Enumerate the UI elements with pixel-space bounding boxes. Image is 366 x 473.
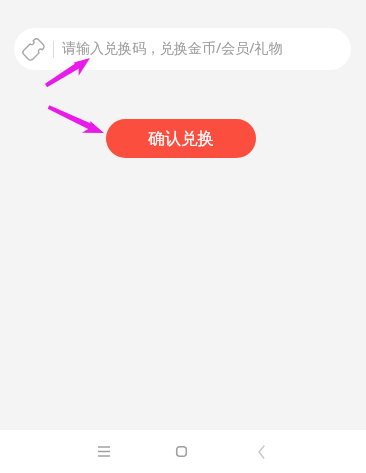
staticText: 请输入兑换码，兑换金币/会员/礼物 xyxy=(62,38,283,57)
button[interactable]: Back xyxy=(237,430,285,473)
staticText: 确认兑换 xyxy=(148,128,214,149)
button[interactable]: 确认兑换 xyxy=(106,119,256,158)
button[interactable]: Recent apps xyxy=(80,430,128,473)
button[interactable]: Home xyxy=(157,430,205,473)
button[interactable]: 请输入兑换码，兑换金币/会员/礼物 xyxy=(14,28,351,70)
